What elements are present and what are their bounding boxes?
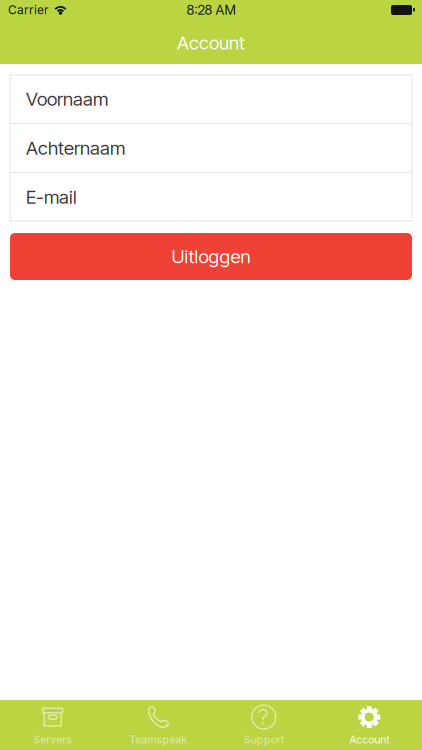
staticText: Support: [244, 733, 284, 746]
staticText: Account: [177, 31, 245, 54]
staticText: Account: [349, 733, 389, 746]
staticText: Uitloggen: [171, 245, 250, 268]
staticText: Teamspeak: [129, 733, 187, 746]
button[interactable]: Support: [211, 700, 316, 750]
staticText: Carrier: [8, 3, 49, 17]
staticText: E-mail: [26, 186, 77, 208]
button[interactable]: E-mail: [10, 173, 412, 221]
staticText: Achternaam: [26, 137, 125, 159]
button[interactable]: Account: [316, 700, 422, 750]
staticText: Servers: [33, 733, 72, 746]
staticText: Voornaam: [26, 88, 108, 110]
button[interactable]: Uitloggen: [10, 233, 412, 280]
button[interactable]: Teamspeak: [105, 700, 211, 750]
button[interactable]: Servers: [0, 700, 105, 750]
button[interactable]: Voornaam: [10, 75, 412, 123]
staticText: 8:28 AM: [186, 2, 235, 18]
button[interactable]: Achternaam: [10, 124, 412, 172]
